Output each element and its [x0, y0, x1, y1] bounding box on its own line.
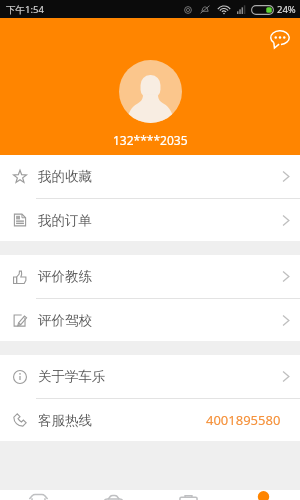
button[interactable]: 关于学车乐 — [0, 355, 300, 398]
staticText: 我的订单 — [38, 212, 92, 229]
staticText: 我的收藏 — [38, 168, 92, 185]
staticText: 评价驾校 — [38, 312, 92, 329]
button[interactable]: 评价教练 — [0, 255, 300, 298]
staticText: 24% — [277, 3, 296, 16]
staticText: 下午1:54 — [6, 3, 44, 16]
button[interactable]: 学车 — [81, 490, 145, 500]
button[interactable]: 订单 — [156, 490, 220, 500]
button[interactable]: Messages — [268, 28, 292, 52]
staticText: 关于学车乐 — [38, 368, 106, 385]
button[interactable]: 我的收藏 — [0, 155, 300, 198]
staticText: 评价教练 — [38, 268, 92, 285]
button[interactable]: 评价驾校 — [0, 299, 300, 341]
staticText: 客服热线 — [38, 412, 92, 429]
button[interactable]: 首页 — [6, 490, 70, 500]
button[interactable]: 我的 — [231, 490, 295, 500]
staticText: 4001895580 — [206, 411, 281, 429]
button[interactable]: 客服热线 — [0, 399, 300, 441]
button[interactable]: 我的订单 — [0, 199, 300, 241]
staticText: 132****2035 — [113, 132, 188, 148]
button[interactable] — [119, 60, 182, 123]
